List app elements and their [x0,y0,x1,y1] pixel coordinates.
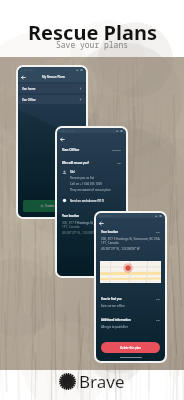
staticText: Who will rescue you? [62,161,89,165]
staticText: Edit [156,298,160,301]
staticText: Edit [117,162,121,165]
button[interactable]: Create a plan [23,200,81,212]
staticText: Your location [101,230,119,234]
staticText: Van Office [22,98,36,102]
staticText: Your location [62,214,80,218]
staticText: Save your plans [56,39,128,50]
staticText: 306, 877 E Hastings St, Vancouver, BC V6… [101,237,160,241]
staticText: 49.281'29" N, -123.080'8" W [62,231,101,235]
staticText: Rescue you as fist [70,176,95,180]
staticText: Rescue Plans [28,19,157,46]
staticText: Create a plan [45,204,64,208]
button[interactable]: Back [21,75,26,80]
staticText: Send an ambulance (911) [70,199,105,203]
staticText: Call on +1 604 355 1005 [70,182,103,186]
staticText: 49.281'29" N, -123.080'8" W [101,247,140,251]
staticText: 306, 877 E Hastings St, [62,221,94,225]
staticText: They are aware of rescue plan [70,188,111,192]
button[interactable]: Van Office [22,95,82,104]
button[interactable]: Back [60,137,65,142]
staticText: Van Office [62,147,80,152]
staticText: Delete this plan [120,346,141,350]
staticText: Rename [112,149,121,152]
button[interactable]: Edit [156,319,160,322]
staticText: Additional information [101,318,131,322]
staticText: Mel [70,170,75,174]
staticText: Edit [156,319,160,322]
button[interactable]: Delete this plan [101,342,160,353]
button[interactable]: Edit [156,231,160,234]
staticText: Allergic to painkiller [101,325,128,329]
button[interactable]: Edit [156,298,160,301]
button[interactable]: Van home [22,84,82,93]
button[interactable]: Edit [117,162,121,165]
staticText: 1P1, Canada [62,225,80,229]
staticText: Edit [156,231,160,234]
staticText: 1P1, Canada [101,241,119,245]
staticText: Brave [79,370,125,393]
staticText: My Rescue Plans [42,75,65,79]
button[interactable]: Rename [112,149,121,152]
button[interactable]: Back [99,221,104,226]
staticText: East corner office [101,304,125,308]
staticText: How to find you [101,297,122,301]
staticText: Van home [22,87,36,91]
